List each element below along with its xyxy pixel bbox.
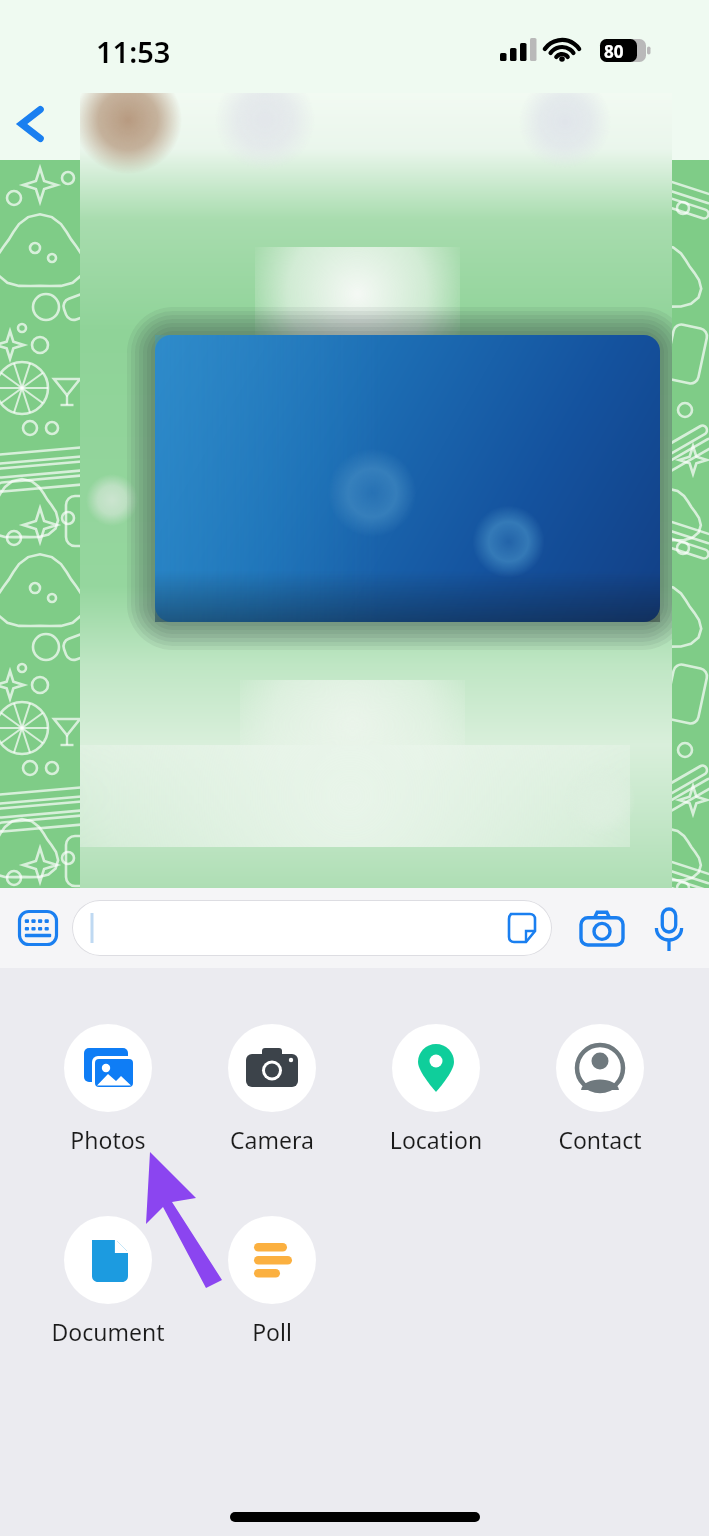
button[interactable]: Location bbox=[374, 1024, 498, 1155]
button[interactable]: Keyboard bbox=[18, 910, 58, 946]
button[interactable]: Camera bbox=[210, 1024, 334, 1155]
button[interactable]: Stickers bbox=[502, 907, 544, 949]
staticText: Poll bbox=[210, 1316, 334, 1347]
staticText: 11:53 bbox=[96, 32, 171, 71]
button[interactable]: Contact bbox=[538, 1024, 662, 1155]
button[interactable]: Document bbox=[46, 1216, 170, 1347]
staticText: 80 bbox=[604, 40, 624, 63]
button[interactable]: Stickers bbox=[72, 900, 552, 956]
button[interactable]: Back bbox=[6, 98, 58, 150]
button[interactable]: Photos bbox=[46, 1024, 170, 1155]
staticText: Location bbox=[374, 1124, 498, 1155]
staticText: Camera bbox=[210, 1124, 334, 1155]
staticText: Photos bbox=[46, 1124, 170, 1155]
staticText: Document bbox=[46, 1316, 170, 1347]
button[interactable]: Poll bbox=[210, 1216, 334, 1347]
staticText: Contact bbox=[538, 1124, 662, 1155]
button[interactable]: Camera bbox=[578, 909, 626, 949]
button[interactable]: Voice message bbox=[648, 904, 690, 954]
